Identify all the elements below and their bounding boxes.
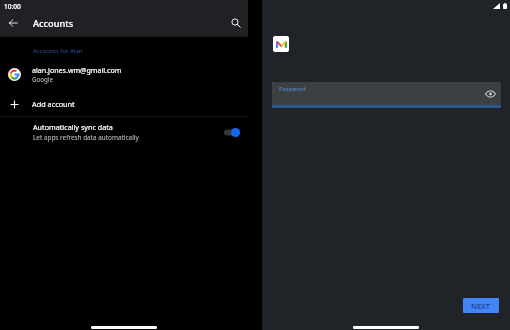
staticText: Automatically sync data (33, 122, 113, 132)
staticText: Accounts (33, 17, 74, 30)
button[interactable]: Back (2, 12, 24, 34)
button[interactable]: Show password (483, 87, 498, 101)
staticText: Let apps refresh data automatically (33, 133, 139, 142)
staticText: 10:00 (4, 2, 21, 11)
button[interactable]: alan.jones.wm@gmail.com (0, 56, 248, 92)
staticText: Accounts for Alan (33, 47, 83, 55)
button[interactable]: NEXT (463, 298, 499, 313)
button[interactable]: Automatically sync data (0, 117, 248, 147)
button[interactable]: Add account (0, 92, 248, 116)
staticText: Add account (32, 99, 75, 109)
button[interactable]: Search (225, 12, 247, 34)
staticText: NEXT (471, 301, 491, 311)
staticText: Google (32, 75, 53, 83)
staticText: Password (279, 85, 306, 93)
staticText: alan.jones.wm@gmail.com (32, 65, 122, 75)
